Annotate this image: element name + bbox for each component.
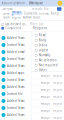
button[interactable]: Added Team — [0, 62, 31, 69]
staticText: No selection — [39, 58, 57, 62]
staticText: Filter list — [30, 22, 43, 26]
staticText: Reject — [53, 109, 62, 112]
button[interactable]: Inbox — [35, 43, 63, 48]
button[interactable]: Accept — [41, 95, 50, 98]
button[interactable]: Not required — [35, 63, 63, 68]
button[interactable]: Added Team — [0, 34, 31, 41]
button[interactable]: Normally — [35, 53, 63, 58]
button[interactable]: Added apps — [0, 69, 31, 76]
button[interactable]: Added Team — [0, 97, 31, 104]
staticText: Added Team — [7, 36, 24, 40]
button[interactable]: Reject — [53, 116, 62, 119]
staticText: Contents — [24, 12, 37, 15]
staticText: Some — [3, 12, 10, 15]
staticText: Keep — [51, 12, 59, 15]
staticText: Last checked contents — [5, 22, 27, 26]
button[interactable]: Accept — [41, 116, 50, 119]
staticText: Accept — [41, 81, 50, 84]
staticText: Added Team — [7, 64, 24, 68]
button[interactable]: Admin tools — [23, 16, 40, 19]
button[interactable]: Completed — [1, 26, 28, 30]
button[interactable]: Accept — [41, 81, 50, 84]
button[interactable]: Reject — [53, 102, 62, 105]
staticText: Accept — [41, 116, 50, 119]
button[interactable]: Invited Team — [0, 55, 31, 62]
button[interactable]: Accept — [41, 102, 50, 105]
staticText: Reject — [53, 81, 62, 84]
staticText: Accept — [41, 109, 50, 112]
staticText: Body — [39, 38, 46, 42]
staticText: Invited Team — [7, 43, 24, 47]
staticText: Invited file — [7, 92, 23, 96]
button[interactable]: Invited file — [0, 90, 31, 97]
button[interactable]: Other — [35, 68, 63, 73]
staticText: Other — [39, 68, 47, 72]
button[interactable]: Retrieve — [38, 12, 49, 15]
staticText: @Workspace — [28, 1, 43, 5]
button[interactable]: Tools — [3, 16, 10, 19]
button[interactable]: Account — [57, 1, 62, 6]
button[interactable]: Accept — [41, 109, 50, 112]
staticText: Added email — [7, 50, 25, 54]
staticText: Managed — [11, 10, 22, 17]
button[interactable]: Accept — [41, 74, 50, 77]
staticText: Digest — [39, 48, 48, 52]
staticText: Recipient — [33, 26, 47, 30]
button[interactable]: Reject — [53, 81, 62, 84]
button[interactable]: Invited Team — [0, 104, 31, 111]
button[interactable]: Contents — [24, 12, 37, 15]
button[interactable]: @Workspace — [28, 1, 43, 5]
staticText: Invited Team — [7, 57, 24, 61]
staticText: Added Team — [7, 99, 24, 103]
button[interactable]: Keep — [51, 12, 59, 15]
button[interactable]: Managed — [11, 12, 22, 15]
button[interactable]: Added Team — [0, 83, 31, 90]
staticText: Tools — [3, 16, 10, 19]
staticText: Admin tools — [23, 16, 40, 19]
staticText: Account platform — [1, 1, 24, 5]
staticText: records file — [32, 7, 49, 11]
staticText: Not required — [39, 63, 58, 67]
staticText: Normally — [39, 53, 50, 57]
staticText: Reject — [53, 102, 62, 105]
button[interactable]: Engine — [11, 16, 21, 19]
staticText: Added Team — [7, 85, 24, 89]
button[interactable]: New item — [57, 7, 61, 11]
button[interactable]: Reject — [53, 95, 62, 98]
button[interactable]: Read — [35, 33, 63, 38]
button[interactable]: Invited Team — [0, 76, 31, 83]
button[interactable]: Added email — [0, 48, 31, 55]
staticText: Completed — [5, 26, 21, 30]
staticText: Read — [39, 33, 46, 37]
staticText: Reject — [53, 74, 62, 77]
staticText: Reject — [53, 116, 62, 119]
button[interactable]: Last checked contents — [1, 22, 28, 26]
staticText: Accept — [41, 74, 50, 77]
button[interactable]: Reject — [53, 74, 62, 77]
button[interactable]: Invited Team — [0, 41, 31, 48]
staticText: Retrieve — [38, 12, 49, 15]
staticText: Invited Team — [7, 106, 24, 110]
staticText: Inbox — [39, 43, 47, 47]
staticText: Overview — [1, 7, 12, 11]
button[interactable]: Digest — [35, 48, 63, 53]
button[interactable]: Added Team — [0, 111, 31, 118]
staticText: Added apps — [7, 71, 24, 75]
button[interactable]: Accept — [41, 88, 50, 91]
button[interactable]: Body — [35, 38, 63, 43]
staticText: Reject — [53, 95, 62, 98]
staticText: Accept — [41, 88, 50, 91]
staticText: Invited Team — [7, 78, 24, 82]
staticText: Added Team — [7, 113, 24, 117]
staticText: Engine — [11, 16, 21, 19]
staticText: Reject — [53, 88, 62, 91]
button[interactable]: No selection — [35, 58, 63, 63]
staticText: Accept — [41, 95, 50, 98]
button[interactable]: Reject — [53, 109, 62, 112]
button[interactable]: Some — [3, 12, 10, 15]
staticText: Accept — [41, 102, 50, 105]
button[interactable]: Reject — [53, 88, 62, 91]
